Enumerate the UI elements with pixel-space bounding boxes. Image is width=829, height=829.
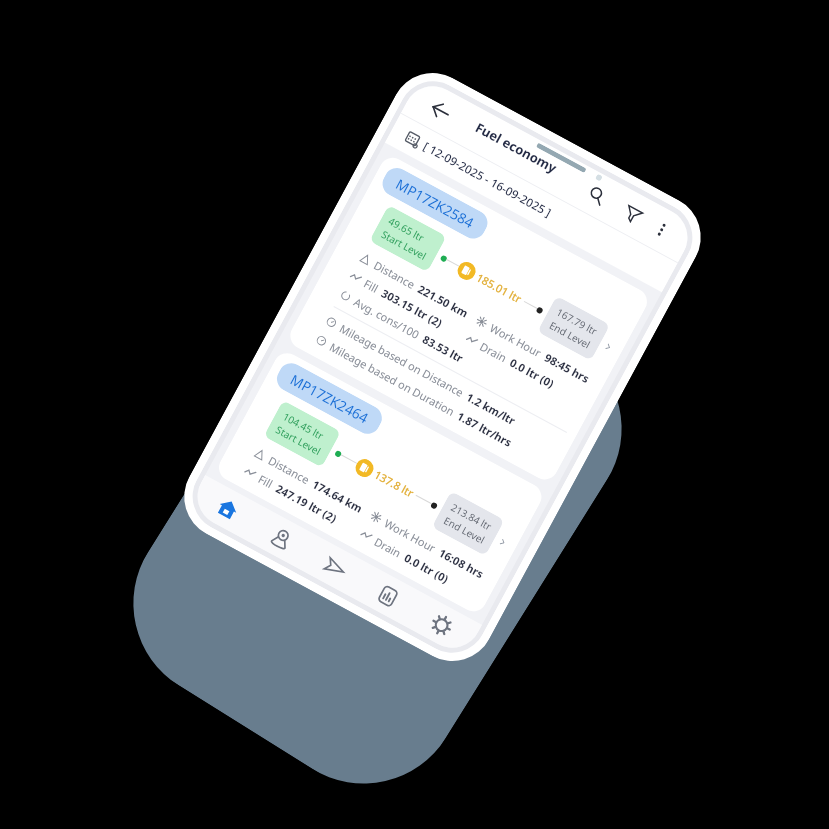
staticText: 0.0 ltr (0) — [507, 355, 557, 391]
staticText: Mileage based on Duration — [327, 339, 457, 419]
staticText: 213.84 ltr — [449, 500, 495, 534]
staticText: Mileage based on Distance — [337, 321, 466, 400]
staticText: Distance — [371, 257, 418, 292]
staticText: 185.01 ltr — [474, 270, 525, 307]
staticText: Avg. cons/100 — [351, 294, 423, 342]
staticText: 167.79 ltr — [554, 305, 600, 338]
staticText: Fill — [361, 276, 382, 296]
button[interactable]: MP17ZK2464 — [214, 348, 546, 616]
staticText: 1.87 ltr/hrs — [455, 408, 514, 450]
staticText: 104.45 ltr — [281, 409, 327, 443]
staticText: 98:45 hrs — [542, 350, 592, 386]
button[interactable]: Back — [422, 92, 458, 127]
staticText: 221.50 km — [415, 281, 471, 320]
staticText: 0.0 ltr (0) — [402, 550, 452, 586]
staticText: 1.2 km/ltr — [464, 389, 518, 428]
staticText: 83.53 ltr — [420, 331, 467, 366]
staticText: MP17ZK2464 — [287, 370, 372, 427]
button[interactable]: Navigate — [304, 538, 366, 595]
staticText: Start Level — [379, 227, 430, 263]
staticText: Work Hour — [382, 515, 439, 556]
button[interactable]: MP17ZK2584 — [285, 153, 652, 484]
staticText: 303.15 ltr (2) — [379, 285, 445, 330]
staticText: MP17ZK2584 — [393, 174, 477, 232]
button[interactable]: More options — [648, 216, 675, 243]
staticText: Fuel economy — [472, 118, 560, 177]
staticText: Drain — [477, 339, 510, 366]
button[interactable]: Search — [579, 177, 614, 212]
staticText: [ 12-09-2025 - 16-09-2025 ] — [420, 139, 555, 221]
button[interactable]: Places — [250, 509, 312, 566]
staticText: 49.65 ltr — [386, 214, 427, 245]
staticText: 137.8 ltr — [372, 467, 417, 500]
button[interactable]: Reports — [357, 567, 419, 624]
staticText: Distance — [266, 453, 312, 487]
staticText: 174.64 km — [310, 476, 365, 516]
staticText: Fill — [256, 471, 276, 491]
staticText: End Level — [441, 513, 488, 547]
button[interactable]: Filter — [615, 196, 650, 232]
button[interactable]: Settings — [410, 596, 472, 653]
staticText: 247.19 ltr (2) — [273, 481, 339, 526]
staticText: Start Level — [273, 422, 324, 458]
staticText: End Level — [547, 318, 593, 352]
staticText: 16:08 hrs — [436, 545, 487, 581]
staticText: Drain — [372, 534, 404, 561]
button[interactable]: Home — [197, 480, 259, 537]
staticText: Work Hour — [487, 320, 545, 360]
